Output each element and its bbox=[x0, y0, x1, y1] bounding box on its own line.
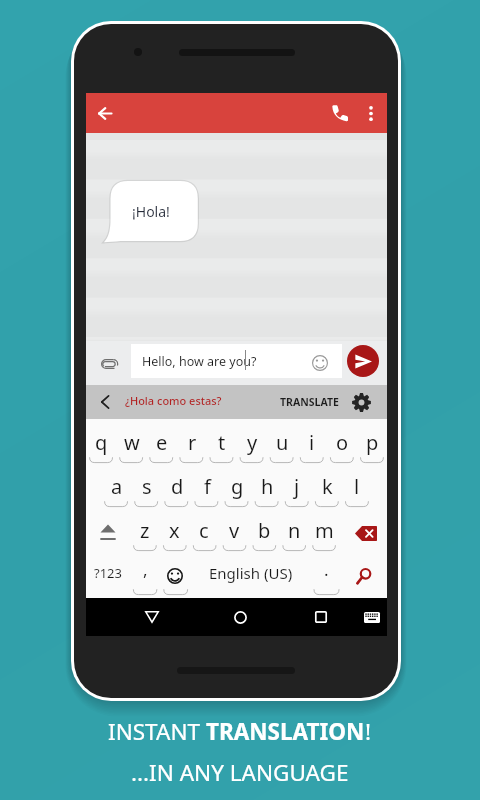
staticText: ¡Hola! bbox=[132, 202, 170, 221]
button[interactable]: g bbox=[222, 463, 252, 507]
button[interactable]: ?123 bbox=[89, 561, 127, 585]
staticText: q bbox=[95, 429, 108, 456]
button[interactable]: Send bbox=[347, 345, 379, 377]
button[interactable]: Shift bbox=[86, 507, 130, 551]
button[interactable]: d bbox=[162, 463, 192, 507]
button[interactable]: x bbox=[159, 507, 189, 551]
button[interactable]: q bbox=[86, 419, 117, 463]
button[interactable]: i bbox=[297, 419, 327, 463]
staticText: t bbox=[218, 429, 226, 456]
button[interactable]: Hello, how are you? bbox=[131, 344, 342, 378]
button[interactable]: z bbox=[130, 507, 159, 551]
staticText: INSTANT bbox=[108, 716, 206, 747]
staticText: s bbox=[142, 473, 152, 500]
staticText: x bbox=[169, 517, 180, 544]
staticText: b bbox=[258, 517, 271, 544]
button[interactable]: y bbox=[237, 419, 267, 463]
staticText: Hello, how are you? bbox=[142, 353, 257, 370]
button[interactable]: a bbox=[101, 463, 132, 507]
button[interactable]: Attach file bbox=[92, 349, 125, 378]
staticText: r bbox=[188, 429, 197, 456]
button[interactable]: Back bbox=[134, 598, 170, 636]
staticText: j bbox=[294, 473, 300, 500]
staticText: f bbox=[204, 473, 211, 500]
staticText: y bbox=[247, 429, 258, 456]
button[interactable]: s bbox=[132, 463, 162, 507]
staticText: g bbox=[231, 473, 244, 500]
button[interactable]: Call bbox=[321, 93, 358, 133]
staticText: . bbox=[324, 558, 329, 581]
staticText: k bbox=[322, 473, 333, 500]
staticText: c bbox=[199, 517, 209, 544]
button[interactable]: n bbox=[279, 507, 309, 551]
button[interactable]: Backspace bbox=[339, 507, 387, 551]
button[interactable]: h bbox=[252, 463, 282, 507]
button[interactable]: u bbox=[267, 419, 297, 463]
staticText: o bbox=[336, 429, 349, 456]
button[interactable]: Search bbox=[352, 565, 374, 587]
staticText: u bbox=[276, 429, 289, 456]
staticText: v bbox=[229, 517, 240, 544]
staticText: m bbox=[315, 517, 334, 544]
button[interactable]: Previous suggestion bbox=[92, 385, 118, 419]
staticText: English (US) bbox=[209, 563, 293, 583]
button[interactable]: English (US) bbox=[204, 561, 298, 585]
staticText: ...IN ANY LANGUAGE bbox=[131, 757, 349, 788]
staticText: ¿Hola como estas? bbox=[125, 393, 222, 408]
button[interactable]: Recent apps bbox=[303, 598, 339, 636]
button[interactable]: r bbox=[177, 419, 207, 463]
button[interactable]: k bbox=[312, 463, 342, 507]
button[interactable]: b bbox=[249, 507, 279, 551]
button[interactable]: Change keyboard bbox=[356, 598, 387, 636]
staticText: , bbox=[143, 558, 148, 581]
staticText: w bbox=[124, 429, 140, 456]
staticText: p bbox=[366, 429, 379, 456]
button[interactable]: Translation settings bbox=[346, 385, 377, 419]
button[interactable]: Comma bbox=[133, 561, 157, 585]
staticText: l bbox=[354, 473, 360, 500]
button[interactable]: j bbox=[282, 463, 312, 507]
staticText: TRANSLATION bbox=[206, 716, 365, 747]
button[interactable]: More options bbox=[357, 93, 385, 133]
staticText: e bbox=[156, 429, 168, 456]
button[interactable]: t bbox=[207, 419, 237, 463]
staticText: ! bbox=[365, 716, 372, 747]
button[interactable]: l bbox=[342, 463, 372, 507]
button[interactable]: w bbox=[117, 419, 147, 463]
staticText: h bbox=[261, 473, 274, 500]
button[interactable]: e bbox=[147, 419, 177, 463]
staticText: n bbox=[288, 517, 301, 544]
button[interactable]: Back bbox=[86, 93, 123, 133]
button[interactable]: m bbox=[309, 507, 339, 551]
button[interactable]: Emoji bbox=[312, 355, 328, 371]
staticText: TRANSLATE bbox=[280, 395, 339, 409]
staticText: a bbox=[111, 473, 123, 500]
button[interactable]: v bbox=[219, 507, 249, 551]
button[interactable]: p bbox=[357, 419, 387, 463]
button[interactable]: Period bbox=[314, 561, 339, 585]
staticText: z bbox=[140, 517, 150, 544]
button[interactable]: TRANSLATE bbox=[272, 385, 347, 419]
button[interactable]: f bbox=[192, 463, 222, 507]
button[interactable]: Emoji keyboard bbox=[163, 564, 187, 588]
button[interactable]: Home bbox=[222, 598, 258, 636]
staticText: ?123 bbox=[94, 564, 122, 582]
staticText: i bbox=[309, 429, 315, 456]
button[interactable]: o bbox=[327, 419, 357, 463]
button[interactable]: c bbox=[189, 507, 219, 551]
staticText: d bbox=[171, 473, 184, 500]
